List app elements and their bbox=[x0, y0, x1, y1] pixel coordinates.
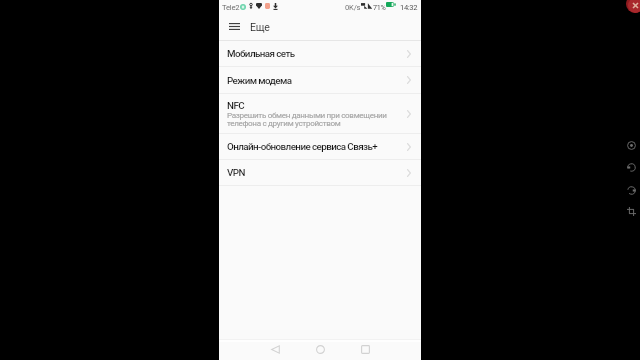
button[interactable]: Режим модема bbox=[219, 67, 421, 93]
staticText: Режим модема bbox=[227, 75, 292, 86]
staticText: VPN bbox=[227, 167, 245, 178]
button[interactable]: VPN bbox=[219, 160, 421, 185]
staticText: Мобильная сеть bbox=[227, 48, 295, 59]
staticText: Онлайн-обновление сервиса Связь+ bbox=[227, 141, 378, 152]
staticText: 0K/s bbox=[345, 3, 361, 12]
staticText: Разрешить обмен данными при совмещении т… bbox=[227, 110, 387, 128]
button[interactable]: Онлайн-обновление сервиса Связь+ bbox=[219, 134, 421, 159]
staticText: 14:32 bbox=[400, 3, 418, 12]
button[interactable]: Мобильная сеть bbox=[219, 41, 421, 66]
staticText: 71% bbox=[373, 3, 386, 11]
staticText: NFC bbox=[227, 100, 245, 111]
button[interactable]: Home bbox=[309, 339, 331, 360]
button[interactable]: Open navigation menu bbox=[225, 17, 244, 36]
button[interactable]: Back bbox=[264, 339, 286, 360]
button[interactable]: Redo bbox=[626, 185, 637, 196]
button[interactable]: Record bbox=[626, 140, 637, 151]
staticText: Tele2 bbox=[222, 3, 240, 12]
button[interactable]: Close recorder bbox=[626, 0, 640, 13]
button[interactable]: Recent apps bbox=[354, 339, 376, 360]
staticText: Еще bbox=[250, 21, 270, 33]
button[interactable]: NFC bbox=[219, 94, 421, 133]
button[interactable]: Crop bbox=[626, 206, 637, 217]
button[interactable]: Undo bbox=[626, 162, 637, 173]
